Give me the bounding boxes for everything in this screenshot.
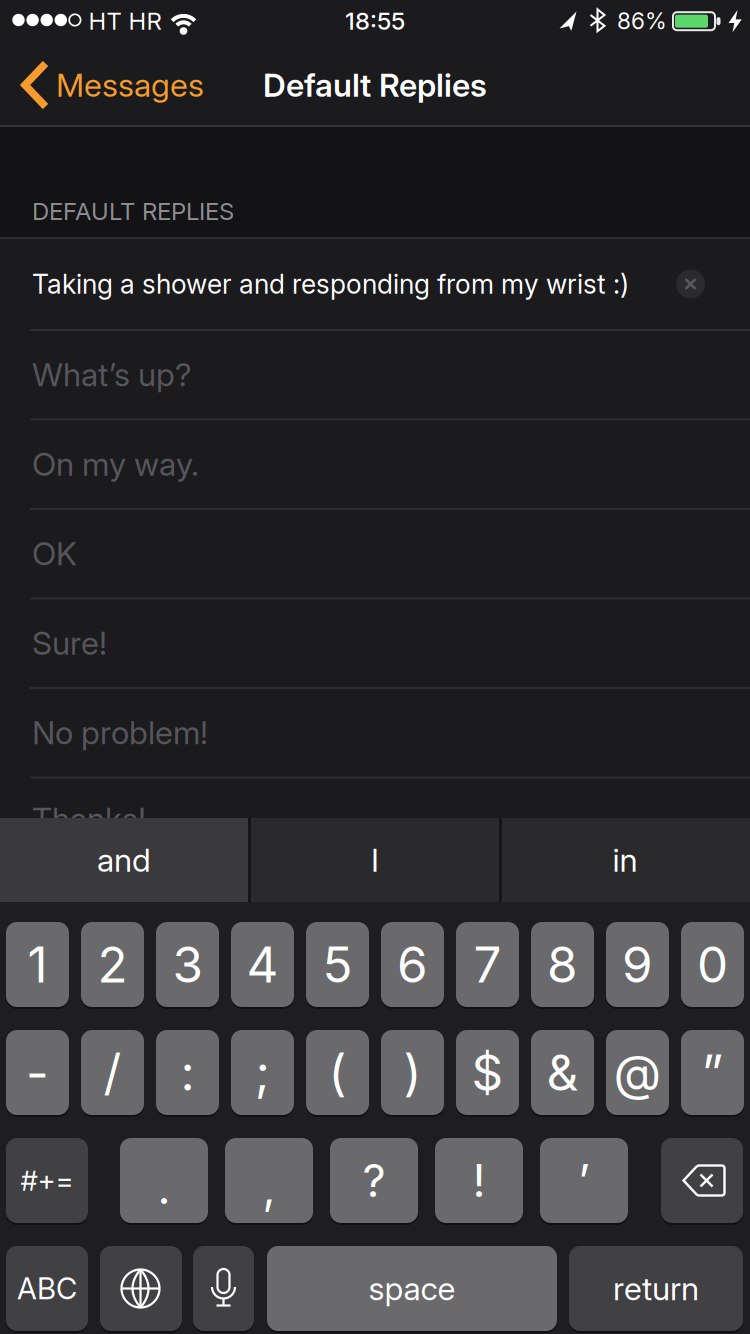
button[interactable]: Dictate — [0, 0, 750, 1334]
staticText: @ — [613, 1043, 661, 1102]
button[interactable]: ? — [330, 1138, 418, 1223]
staticText: ’ — [578, 1154, 590, 1207]
button[interactable]: #+= — [6, 1138, 88, 1223]
button[interactable]: What’s up? — [0, 0, 750, 1334]
staticText: 6 — [397, 935, 428, 994]
staticText: / — [103, 1043, 121, 1102]
staticText: DEFAULT REPLIES — [32, 197, 234, 225]
staticText: 1 — [27, 935, 47, 994]
staticText: I — [371, 841, 379, 879]
button[interactable]: / — [81, 1030, 144, 1115]
button[interactable]: : — [156, 1030, 219, 1115]
button[interactable]: and — [0, 0, 750, 1334]
button[interactable]: $ — [456, 1030, 519, 1115]
button[interactable]: ! — [435, 1138, 523, 1223]
button[interactable]: Delete — [0, 0, 750, 1334]
button[interactable]: 4 — [231, 922, 294, 1007]
staticText: ; — [255, 1043, 270, 1102]
button[interactable]: 6 — [381, 922, 444, 1007]
staticText: in — [612, 841, 637, 879]
staticText: space — [368, 1270, 455, 1307]
button[interactable]: 1 — [6, 922, 69, 1007]
button[interactable]: & — [531, 1030, 594, 1115]
staticText: OK — [32, 535, 77, 572]
button[interactable]: . — [120, 1138, 208, 1223]
button[interactable]: ) — [381, 1030, 444, 1115]
button[interactable]: 9 — [606, 922, 669, 1007]
staticText: 18:55 — [345, 7, 405, 35]
staticText: ABC — [17, 1271, 77, 1306]
staticText: On my way. — [32, 445, 199, 483]
button[interactable]: - — [6, 1030, 69, 1115]
button[interactable]: Taking a shower and responding from my w… — [0, 0, 700, 92]
staticText: #+= — [20, 1164, 73, 1197]
button[interactable]: ABC — [6, 1246, 88, 1331]
staticText: 8 — [547, 935, 578, 994]
staticText: 4 — [246, 935, 278, 994]
button[interactable]: ” — [681, 1030, 744, 1115]
button[interactable]: 0 — [681, 922, 744, 1007]
button[interactable]: ; — [231, 1030, 294, 1115]
button[interactable]: Clear text — [676, 269, 705, 298]
staticText: . — [157, 1161, 170, 1214]
button[interactable]: Back to Messages — [0, 0, 204, 126]
staticText: 3 — [172, 935, 202, 994]
staticText: : — [180, 1043, 194, 1102]
button[interactable]: 5 — [306, 922, 369, 1007]
button[interactable]: No problem! — [0, 0, 750, 1334]
button[interactable]: I — [0, 0, 750, 1334]
staticText: ! — [472, 1154, 485, 1207]
staticText: What’s up? — [32, 356, 192, 393]
staticText: 7 — [473, 935, 501, 994]
button[interactable]: Next keyboard — [0, 0, 750, 1334]
staticText: - — [26, 1043, 49, 1102]
staticText: Default Replies — [263, 66, 487, 104]
staticText: ” — [701, 1043, 723, 1102]
staticText: 5 — [322, 935, 352, 994]
staticText: No problem! — [32, 714, 208, 751]
button[interactable]: 3 — [156, 922, 219, 1007]
button[interactable]: space — [267, 1246, 557, 1331]
button[interactable]: 7 — [456, 922, 519, 1007]
staticText: Sure! — [32, 624, 107, 662]
button[interactable]: OK — [0, 0, 750, 1334]
staticText: and — [97, 841, 151, 879]
button[interactable]: On my way. — [0, 0, 750, 1334]
staticText: Messages — [56, 66, 204, 104]
staticText: 86% — [617, 8, 667, 34]
staticText: , — [262, 1161, 275, 1214]
button[interactable]: Sure! — [0, 0, 750, 1334]
staticText: Taking a shower and responding from my w… — [32, 268, 629, 300]
staticText: ? — [362, 1154, 385, 1207]
button[interactable]: 8 — [531, 922, 594, 1007]
staticText: 2 — [97, 935, 127, 994]
button[interactable]: in — [0, 0, 750, 1334]
staticText: & — [546, 1043, 578, 1102]
staticText: ) — [403, 1043, 421, 1102]
button[interactable]: 2 — [81, 922, 144, 1007]
staticText: ( — [328, 1043, 346, 1102]
staticText: $ — [471, 1043, 503, 1102]
button[interactable]: , — [225, 1138, 313, 1223]
button[interactable]: return — [569, 1246, 743, 1331]
button[interactable]: Thanks! — [0, 0, 750, 1334]
button[interactable]: ( — [306, 1030, 369, 1115]
button[interactable]: @ — [606, 1030, 669, 1115]
staticText: 0 — [697, 935, 728, 994]
button[interactable]: ’ — [540, 1138, 628, 1223]
staticText: 9 — [622, 935, 653, 994]
staticText: return — [613, 1270, 699, 1307]
staticText: Thanks! — [32, 800, 146, 838]
staticText: HT HR — [88, 7, 161, 35]
